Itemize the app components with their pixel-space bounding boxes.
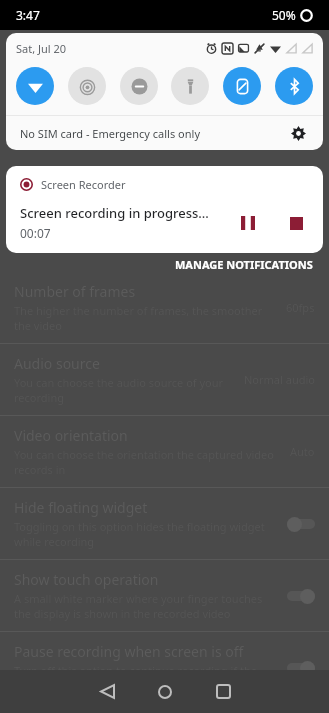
button[interactable]: Flashlight: [171, 67, 209, 105]
button[interactable]: Wi-Fi: [16, 67, 54, 105]
button[interactable]: Back: [78, 670, 136, 713]
staticText: 50%: [272, 7, 296, 23]
button[interactable]: Bluetooth: [275, 67, 313, 105]
button[interactable]: Settings: [287, 122, 309, 144]
button[interactable]: Auto rotate: [223, 67, 261, 105]
staticText: Pause recording when screen is off: [14, 642, 244, 661]
button[interactable]: Pause: [233, 208, 263, 238]
button[interactable]: Do not disturb: [120, 67, 158, 105]
button[interactable]: Pause recording when screen is off: [0, 632, 329, 704]
staticText: Number of frames: [14, 282, 136, 301]
staticText: 00:07: [20, 225, 51, 241]
staticText: Show touch operation: [14, 570, 159, 589]
button[interactable]: Hotspot: [68, 67, 106, 105]
staticText: Sat, Jul 20: [16, 41, 67, 56]
staticText: No SIM card - Emergency calls only: [20, 126, 200, 141]
button[interactable]: Recents: [194, 670, 252, 713]
staticText: Screen recording in progress…: [20, 204, 209, 222]
staticText: Turn off this option to continue recordi…: [14, 663, 275, 693]
staticText: Audio source: [14, 354, 100, 373]
button[interactable]: Hide floating widget: [0, 488, 329, 560]
button[interactable]: Stop: [281, 208, 311, 238]
staticText: Screen Recorder: [41, 177, 126, 192]
button[interactable]: Show touch operation: [0, 560, 329, 632]
staticText: 3:47: [16, 7, 40, 23]
button[interactable]: Screen Recorder: [6, 166, 323, 253]
button[interactable]: No SIM card - Emergency calls only: [6, 116, 323, 150]
button[interactable]: Home: [136, 670, 194, 713]
staticText: Video orientation: [14, 426, 128, 445]
staticText: Hide floating widget: [14, 498, 148, 517]
button[interactable]: MANAGE NOTIFICATIONS: [171, 253, 317, 276]
staticText: MANAGE NOTIFICATIONS: [175, 257, 313, 272]
